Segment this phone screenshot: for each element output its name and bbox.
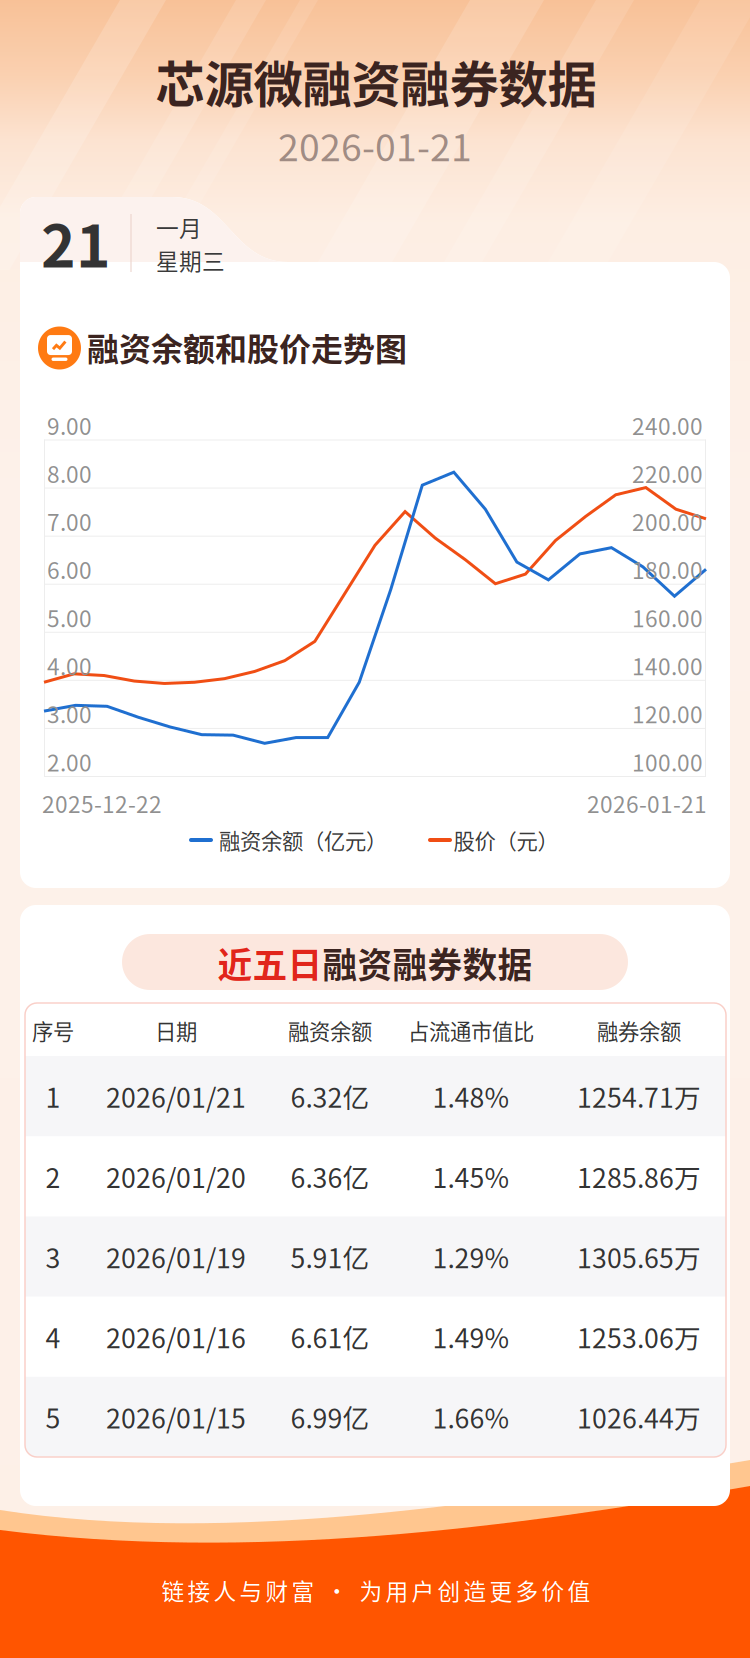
staticText: 2026/01/19 (106, 1237, 246, 1276)
staticText: 3 (45, 1237, 60, 1276)
staticText: 160.00 (632, 601, 703, 634)
staticText: 1.29% (432, 1237, 509, 1276)
staticText: 星期三 (156, 244, 225, 276)
staticText: 1.45% (432, 1157, 509, 1196)
staticText: 占流通市值比 (408, 1015, 534, 1046)
staticText: 6.99亿 (290, 1398, 369, 1436)
staticText: 6.32亿 (290, 1077, 369, 1115)
staticText: 200.00 (632, 505, 703, 537)
staticText: 2026/01/16 (106, 1317, 246, 1356)
staticText: 4.00 (47, 649, 92, 682)
staticText: 1.48% (432, 1077, 509, 1115)
staticText: 2026/01/20 (106, 1157, 246, 1196)
staticText: 2026/01/15 (106, 1398, 246, 1436)
staticText: 近五日 (217, 938, 322, 988)
staticText: 240.00 (632, 409, 703, 441)
staticText: 1254.71万 (577, 1077, 701, 1115)
staticText: 6.61亿 (290, 1317, 369, 1356)
staticText: 融券余额 (597, 1015, 681, 1046)
staticText: 6.00 (47, 553, 92, 586)
staticText: 股价（元） (453, 825, 558, 855)
staticText: 融资余额和股价走势图 (87, 324, 407, 370)
staticText: 1.66% (432, 1398, 509, 1436)
staticText: 2026-01-21 (278, 118, 472, 172)
staticText: 120.00 (632, 697, 703, 730)
staticText: 日期 (155, 1015, 197, 1046)
staticText: 2026/01/21 (106, 1077, 246, 1115)
staticText: 1.49% (432, 1317, 509, 1356)
staticText: 1026.44万 (577, 1398, 701, 1436)
staticText: 180.00 (632, 553, 703, 586)
staticText: 6.36亿 (290, 1157, 369, 1196)
staticText: 序号 (32, 1015, 74, 1046)
staticText: 9.00 (47, 409, 92, 441)
staticText: 140.00 (632, 649, 703, 682)
staticText: 100.00 (632, 745, 703, 778)
staticText: 7.00 (47, 505, 92, 537)
staticText: 1 (45, 1077, 60, 1115)
staticText: 5.91亿 (290, 1237, 369, 1276)
staticText: 2025-12-22 (42, 787, 162, 819)
staticText: 8.00 (47, 457, 92, 489)
staticText: 1253.06万 (577, 1317, 701, 1356)
staticText: 220.00 (632, 457, 703, 489)
staticText: 5.00 (47, 601, 92, 634)
staticText: 2 (45, 1157, 60, 1196)
staticText: 融资融券数据 (322, 938, 532, 988)
staticText: 1285.86万 (577, 1157, 701, 1196)
staticText: 1305.65万 (577, 1237, 701, 1276)
staticText: 5 (45, 1398, 60, 1436)
staticText: 3.00 (47, 697, 92, 730)
staticText: 融资余额 (288, 1015, 372, 1046)
staticText: 2026-01-21 (587, 787, 707, 819)
staticText: 芯源微融资融券数据 (155, 45, 596, 117)
staticText: 2.00 (47, 745, 92, 778)
staticText: 链接人与财富 · 为用户创造更多价值 (161, 1574, 590, 1606)
staticText: 21 (41, 199, 111, 284)
staticText: 融资余额（亿元） (219, 825, 387, 855)
staticText: 4 (45, 1317, 60, 1356)
staticText: 一月 (156, 211, 202, 243)
